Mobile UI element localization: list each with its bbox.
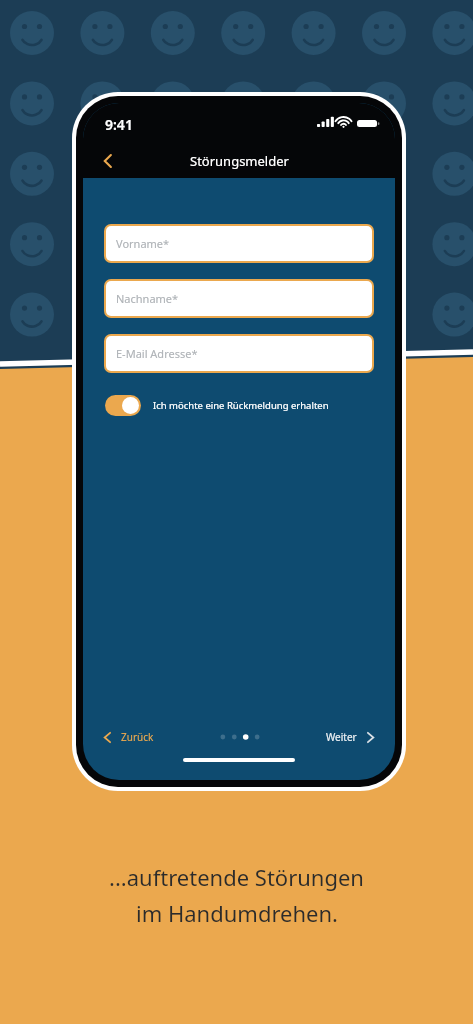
staticText: Störungsmelder [190, 152, 289, 170]
button[interactable]: E-Mail Adresse* [106, 336, 372, 371]
staticText: Weiter [326, 730, 357, 744]
staticText: im Handumdrehen. [136, 898, 338, 928]
button[interactable]: Back [91, 144, 125, 178]
staticText: 9:41 [105, 115, 133, 134]
staticText: Vorname* [116, 236, 170, 251]
button[interactable]: Zurück [97, 726, 158, 748]
button[interactable]: Nachname* [106, 281, 372, 316]
staticText: Nachname* [116, 291, 179, 306]
button[interactable]: Weiter [322, 726, 381, 748]
staticText: Ich möchte eine Rückmeldung erhalten [153, 399, 329, 412]
button[interactable]: Vorname* [106, 226, 372, 261]
staticText: E-Mail Adresse* [116, 346, 198, 361]
staticText: ...auftretende Störungen [109, 862, 364, 892]
button[interactable]: Ich möchte eine Rückmeldung erhalten [105, 395, 395, 416]
staticText: Zurück [121, 730, 154, 744]
